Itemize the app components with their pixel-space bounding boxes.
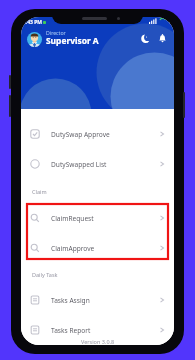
staticText: 9:43 PM xyxy=(23,19,42,26)
staticText: Version 3.0.8 xyxy=(81,338,115,345)
staticText: ClaimApprove xyxy=(51,244,95,253)
button[interactable]: DutySwap Approve xyxy=(21,119,174,149)
staticText: DutySwap Approve xyxy=(51,130,110,139)
button[interactable]: Notifications xyxy=(156,32,169,45)
button[interactable]: ClaimRequest xyxy=(21,203,174,233)
staticText: ClaimRequest xyxy=(51,214,94,223)
staticText: Tasks Assign xyxy=(51,296,90,305)
staticText: Tasks Report xyxy=(51,326,91,335)
staticText: Supervisor A xyxy=(46,35,99,46)
button[interactable]: Dark mode xyxy=(139,32,152,45)
button[interactable]: Tasks Assign xyxy=(21,285,174,315)
button[interactable]: ClaimApprove xyxy=(21,233,174,263)
button[interactable]: Tasks Report xyxy=(21,315,174,345)
button[interactable]: DutySwapped List xyxy=(21,149,174,179)
staticText: Director xyxy=(46,29,66,36)
staticText: Claim xyxy=(32,188,47,195)
staticText: Daily Task xyxy=(32,271,58,278)
staticText: DutySwapped List xyxy=(51,160,107,169)
